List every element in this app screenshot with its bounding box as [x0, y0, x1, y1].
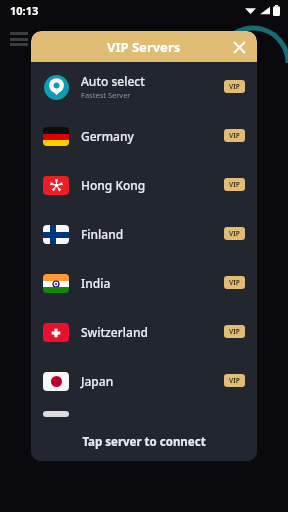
staticText: VIP	[229, 180, 240, 189]
button[interactable]: Japan	[31, 356, 257, 405]
button[interactable]: Close	[227, 35, 251, 59]
staticText: Fastest Server	[81, 90, 131, 100]
staticText: Auto select	[81, 73, 145, 89]
staticText: VIP	[229, 278, 240, 287]
staticText: VIP	[229, 327, 240, 336]
staticText: Japan	[81, 373, 114, 389]
staticText: VIP	[229, 82, 240, 91]
staticText: India	[81, 275, 111, 291]
button[interactable]: Finland	[31, 209, 257, 258]
staticText: Germany	[81, 128, 134, 144]
button[interactable]: Hong Kong	[31, 160, 257, 209]
button[interactable]: Switzerland	[31, 307, 257, 356]
button[interactable]: Auto select	[31, 62, 257, 111]
staticText: Tap server to connect	[82, 434, 206, 450]
button[interactable]: India	[31, 258, 257, 307]
staticText: Switzerland	[81, 324, 148, 340]
button[interactable]: Germany	[31, 111, 257, 160]
staticText: VIP Servers	[107, 38, 181, 56]
staticText: 10:13	[10, 3, 39, 18]
staticText: Finland	[81, 226, 124, 242]
staticText: VIP	[229, 229, 240, 238]
staticText: VIP	[229, 376, 240, 385]
staticText: VIP	[229, 131, 240, 140]
staticText: Hong Kong	[81, 177, 146, 193]
